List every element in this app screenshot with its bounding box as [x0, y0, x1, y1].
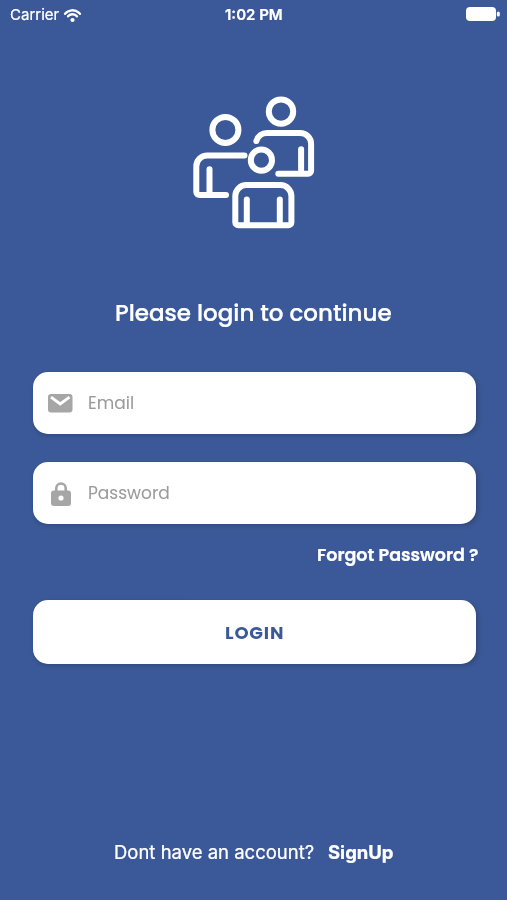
button[interactable]: Forgot Password ?: [317, 543, 479, 568]
button[interactable]: Password: [33, 462, 476, 524]
staticText: 1:02 PM: [225, 5, 283, 23]
staticText: Dont have an account?: [114, 841, 315, 863]
staticText: Carrier: [10, 5, 60, 23]
staticText: LOGIN: [225, 620, 285, 645]
button[interactable]: Email: [33, 372, 476, 434]
button[interactable]: LOGIN: [33, 600, 476, 664]
staticText: Forgot Password ?: [317, 543, 479, 568]
staticText: Password: [88, 481, 170, 505]
staticText: SignUp: [328, 841, 394, 863]
staticText: Email: [88, 391, 135, 415]
staticText: Please login to continue: [115, 297, 392, 329]
button[interactable]: SignUp: [328, 841, 394, 863]
